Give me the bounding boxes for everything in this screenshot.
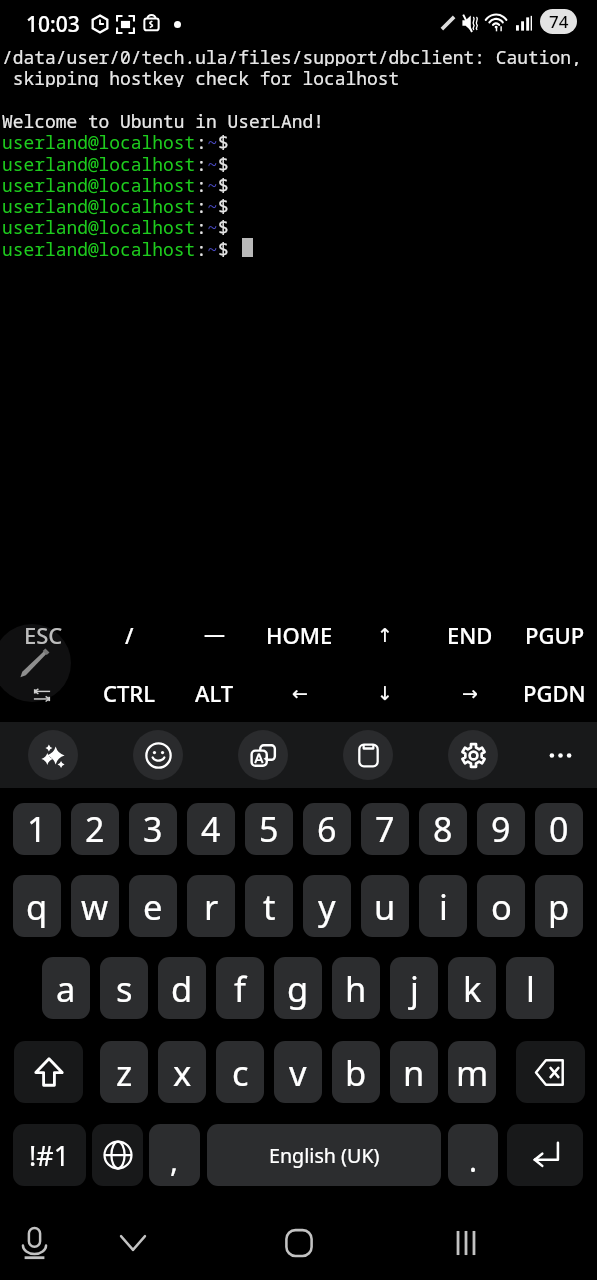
button[interactable]: Emoji bbox=[133, 730, 183, 780]
button[interactable]: Clipboard bbox=[343, 730, 393, 780]
button[interactable]: More options bbox=[535, 730, 585, 780]
button[interactable]: CTRL bbox=[86, 667, 172, 718]
staticText: !#1 bbox=[29, 1137, 70, 1174]
button[interactable]: English (UK) bbox=[207, 1124, 441, 1186]
button[interactable]: Backspace bbox=[516, 1041, 585, 1103]
button[interactable]: Recents bbox=[436, 1213, 496, 1273]
staticText: s bbox=[116, 965, 133, 1012]
button[interactable]: Language bbox=[92, 1124, 143, 1186]
button[interactable]: → bbox=[427, 667, 512, 718]
button[interactable]: . bbox=[448, 1124, 498, 1186]
button[interactable]: a bbox=[42, 957, 90, 1019]
button[interactable]: ALT bbox=[172, 667, 257, 718]
staticText: ~ bbox=[207, 194, 218, 215]
staticText: r bbox=[204, 883, 219, 930]
staticText: d bbox=[171, 965, 193, 1012]
button[interactable]: q bbox=[13, 875, 61, 937]
button[interactable]: l bbox=[506, 957, 554, 1019]
button[interactable]: , bbox=[149, 1124, 200, 1186]
staticText: 3 bbox=[143, 806, 163, 852]
button[interactable]: 2 bbox=[71, 803, 119, 855]
button[interactable]: v bbox=[274, 1041, 322, 1103]
button[interactable]: ↑ bbox=[342, 609, 427, 660]
button[interactable]: e bbox=[129, 875, 177, 937]
button[interactable]: k bbox=[448, 957, 496, 1019]
button[interactable]: HOME bbox=[257, 609, 342, 660]
staticText: 5 bbox=[259, 806, 279, 852]
staticText: $ bbox=[218, 237, 229, 258]
staticText: ↑ bbox=[377, 624, 393, 646]
staticText: END bbox=[447, 620, 493, 650]
button[interactable]: o bbox=[477, 875, 525, 937]
button[interactable]: p bbox=[535, 875, 583, 937]
button[interactable]: 3 bbox=[129, 803, 177, 855]
button[interactable]: Edit bbox=[0, 624, 71, 702]
button[interactable]: Settings bbox=[448, 730, 498, 780]
button[interactable]: m bbox=[448, 1041, 496, 1103]
button[interactable]: Enter bbox=[507, 1124, 583, 1186]
button[interactable]: !#1 bbox=[13, 1124, 86, 1186]
button[interactable]: i bbox=[419, 875, 467, 937]
staticText: : bbox=[196, 152, 207, 173]
staticText: userland@localhost bbox=[2, 194, 196, 215]
button[interactable]: h bbox=[332, 957, 380, 1019]
button[interactable]: ↓ bbox=[342, 667, 427, 718]
button[interactable]: w bbox=[71, 875, 119, 937]
button[interactable]: z bbox=[100, 1041, 148, 1103]
button[interactable]: / bbox=[86, 609, 172, 660]
button[interactable]: u bbox=[361, 875, 409, 937]
button[interactable]: g bbox=[274, 957, 322, 1019]
button[interactable]: 5 bbox=[245, 803, 293, 855]
button[interactable]: Home bbox=[269, 1213, 329, 1273]
button[interactable]: c bbox=[216, 1041, 264, 1103]
staticText: b bbox=[345, 1049, 367, 1096]
staticText: userland@localhost bbox=[2, 173, 196, 194]
button[interactable]: j bbox=[390, 957, 438, 1019]
staticText: l bbox=[526, 965, 535, 1012]
button[interactable]: 6 bbox=[303, 803, 351, 855]
button[interactable]: ESC bbox=[0, 609, 86, 660]
button[interactable]: y bbox=[303, 875, 351, 937]
button[interactable]: END bbox=[427, 609, 512, 660]
staticText: f bbox=[234, 965, 246, 1012]
staticText: w bbox=[81, 883, 109, 930]
staticText: ~ bbox=[207, 173, 218, 194]
button[interactable]: 7 bbox=[361, 803, 409, 855]
staticText: n bbox=[403, 1049, 425, 1096]
button[interactable]: — bbox=[172, 609, 257, 660]
staticText: . bbox=[469, 1140, 478, 1181]
button[interactable]: 9 bbox=[477, 803, 525, 855]
button[interactable]: 0 bbox=[535, 803, 583, 855]
staticText: : bbox=[196, 237, 207, 258]
button[interactable]: t bbox=[245, 875, 293, 937]
button[interactable]: x bbox=[158, 1041, 206, 1103]
button[interactable]: n bbox=[390, 1041, 438, 1103]
button[interactable]: f bbox=[216, 957, 264, 1019]
staticText: q bbox=[26, 883, 48, 930]
staticText: z bbox=[116, 1049, 133, 1096]
staticText: $ bbox=[218, 173, 229, 194]
button[interactable]: 1 bbox=[13, 803, 61, 855]
staticText: ALT bbox=[195, 678, 234, 708]
staticText: ↓ bbox=[377, 682, 393, 704]
button[interactable]: r bbox=[187, 875, 235, 937]
button[interactable]: 4 bbox=[187, 803, 235, 855]
button[interactable]: 8 bbox=[419, 803, 467, 855]
staticText: g bbox=[287, 965, 309, 1012]
button[interactable]: Assistant bbox=[28, 730, 78, 780]
button[interactable]: Shift bbox=[14, 1041, 83, 1103]
button[interactable]: b bbox=[332, 1041, 380, 1103]
button[interactable]: d bbox=[158, 957, 206, 1019]
button[interactable]: Hide keyboard bbox=[103, 1213, 163, 1273]
button[interactable]: ← bbox=[257, 667, 342, 718]
staticText: Welcome to Ubuntu in UserLAnd! bbox=[2, 109, 325, 130]
button[interactable]: Translate bbox=[238, 730, 288, 780]
button[interactable]: Voice input bbox=[4, 1213, 64, 1273]
button[interactable]: PGDN bbox=[512, 667, 597, 718]
staticText: : bbox=[196, 194, 207, 215]
button[interactable]: PGUP bbox=[512, 609, 597, 660]
staticText: userland@localhost bbox=[2, 237, 196, 258]
staticText: 10:03 bbox=[26, 10, 80, 39]
staticText: English (UK) bbox=[269, 1142, 380, 1169]
button[interactable]: s bbox=[100, 957, 148, 1019]
